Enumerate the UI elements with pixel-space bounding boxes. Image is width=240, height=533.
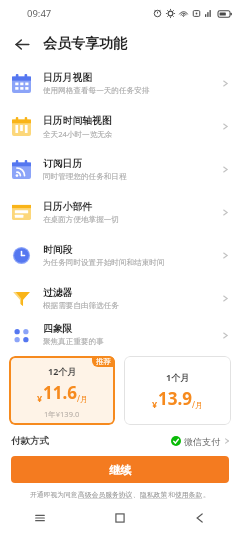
staticText: 使用条款	[175, 490, 203, 499]
staticText: 11.6	[43, 381, 77, 404]
staticText: 订阅日历	[43, 158, 83, 170]
staticText: 。	[203, 490, 210, 499]
staticText: 付款方式	[11, 435, 49, 447]
button[interactable]: Home	[80, 503, 160, 533]
staticText: 四象限	[43, 323, 73, 335]
staticText: 在桌面方便地掌握一切	[43, 215, 119, 225]
staticText: 为任务同时设置开始时间和结束时间	[43, 258, 165, 268]
staticText: 时间段	[43, 244, 73, 256]
button[interactable]: 隐私政策	[140, 490, 168, 499]
button[interactable]: 推荐	[9, 356, 115, 425]
staticText: 和	[168, 490, 175, 499]
button[interactable]: Back	[8, 30, 36, 58]
staticText: 推荐	[96, 357, 111, 366]
button[interactable]: 高级会员服务协议	[78, 490, 133, 499]
staticText: 、	[133, 490, 140, 499]
button[interactable]: 日历时间轴视图	[0, 105, 240, 148]
staticText: 隐私政策	[140, 490, 168, 499]
button[interactable]: 1个月	[124, 356, 231, 425]
staticText: 1个月	[166, 371, 190, 383]
button[interactable]: 过滤器	[0, 277, 240, 320]
staticText: 使用网格查看每一天的任务安排	[43, 86, 150, 96]
button[interactable]: 订阅日历	[0, 148, 240, 191]
staticText: 微信支付	[184, 436, 220, 447]
button[interactable]: 四象限	[0, 320, 240, 350]
button[interactable]: 日历小部件	[0, 191, 240, 234]
staticText: 会员专享功能	[43, 35, 127, 53]
staticText: /月	[192, 399, 203, 410]
staticText: 根据需要自由筛选任务	[43, 301, 119, 311]
staticText: 高级会员服务协议	[78, 490, 133, 499]
staticText: ¥	[152, 398, 158, 410]
staticText: 开通即视为同意	[30, 490, 78, 499]
button[interactable]: 付款方式	[11, 435, 231, 447]
staticText: 1年¥139.0	[44, 409, 80, 419]
button[interactable]: 时间段	[0, 234, 240, 277]
staticText: 09:47	[27, 7, 52, 20]
button[interactable]: Back	[160, 503, 240, 533]
button[interactable]: 使用条款	[175, 490, 203, 499]
staticText: /月	[77, 393, 88, 404]
staticText: 继续	[109, 463, 131, 477]
button[interactable]: 日历月视图	[0, 62, 240, 105]
staticText: ¥	[37, 392, 43, 404]
staticText: 13.9	[158, 387, 192, 410]
button[interactable]: 继续	[11, 456, 229, 483]
staticText: 12个月	[48, 365, 77, 377]
staticText: 日历时间轴视图	[43, 115, 112, 127]
staticText: 日历月视图	[43, 72, 92, 84]
staticText: 日历小部件	[43, 201, 92, 213]
staticText: 全天24小时一览无余	[43, 129, 113, 139]
button[interactable]: Recents	[0, 503, 80, 533]
staticText: 过滤器	[43, 287, 73, 299]
staticText: 聚焦真正重要的事	[43, 337, 104, 347]
staticText: 同时管理您的任务和日程	[43, 172, 127, 182]
